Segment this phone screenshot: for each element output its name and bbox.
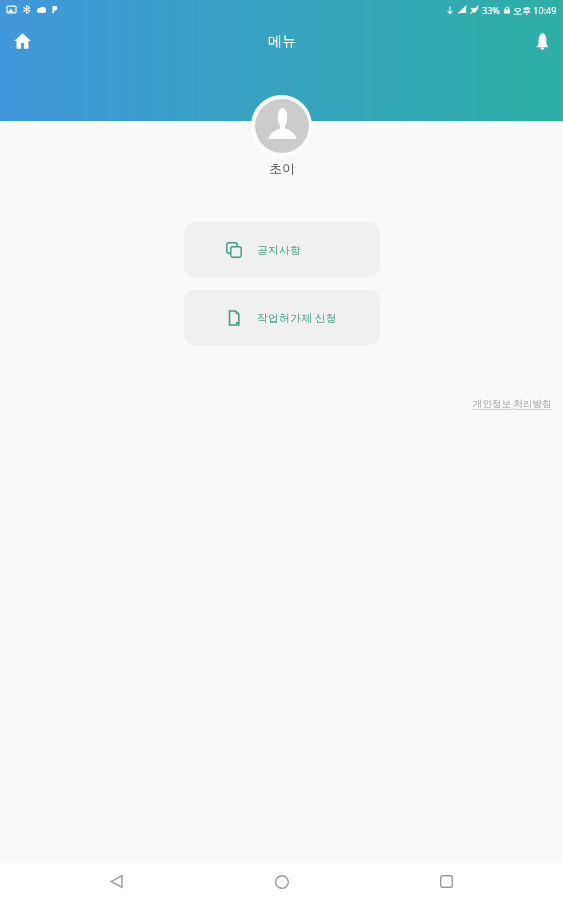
staticText: 초이 [269,160,295,176]
button[interactable]: Recents [428,863,465,900]
button[interactable]: 작업허가제 신청 [184,290,380,345]
button[interactable]: Back [98,863,135,900]
staticText: 오후 10:49 [513,4,557,16]
button[interactable]: 개인정보 처리방침 [473,397,552,410]
button[interactable]: Home [0,20,44,62]
button[interactable]: Home [263,863,300,900]
staticText: 공지사항 [257,243,301,257]
staticText: 33% [482,4,500,16]
staticText: 개인정보 처리방침 [473,397,552,410]
button[interactable]: 공지사항 [184,222,380,277]
button[interactable]: Notifications [521,20,563,62]
staticText: 메뉴 [268,33,296,51]
staticText: 작업허가제 신청 [257,310,337,325]
button[interactable]: Profile [251,95,312,156]
